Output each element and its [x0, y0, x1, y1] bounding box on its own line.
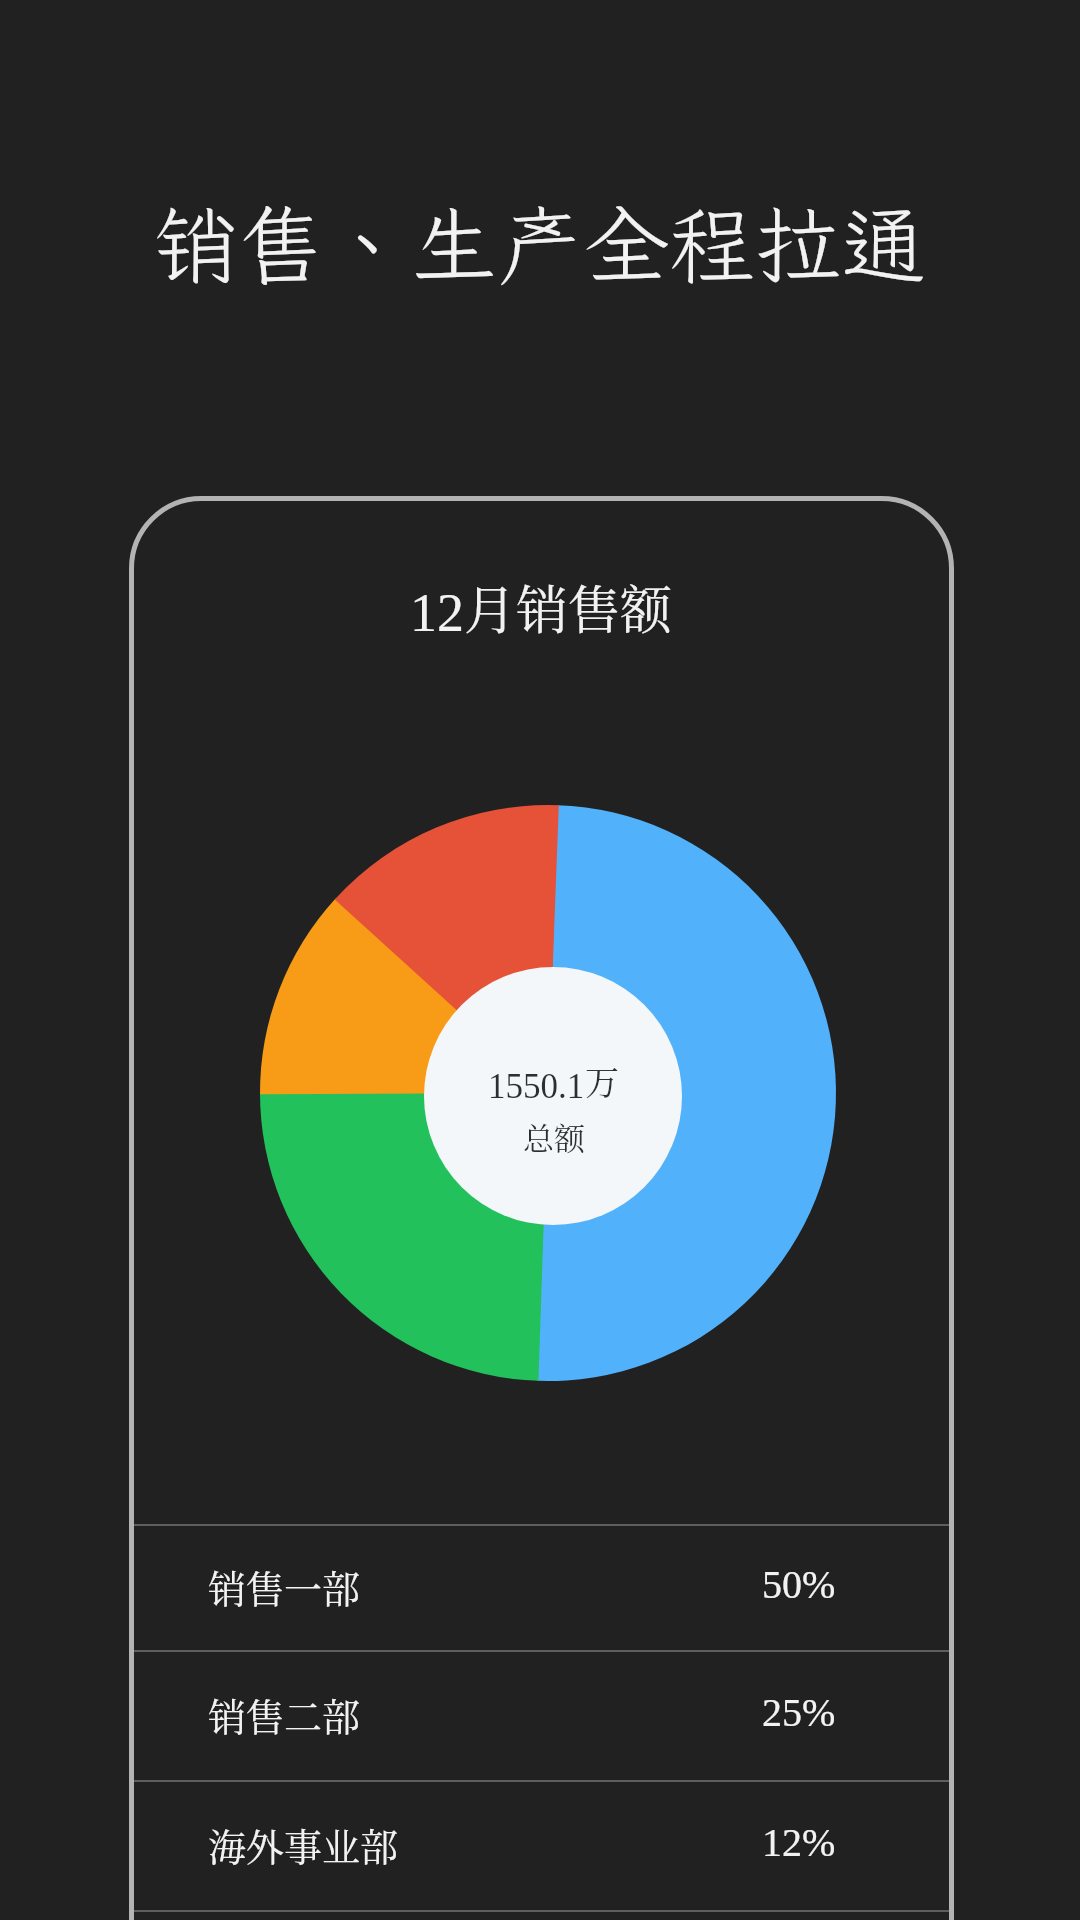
button[interactable]: 销售一部 [134, 1524, 949, 1650]
staticText: 海外事业部 [208, 1817, 399, 1872]
button[interactable]: 海外事业部 [134, 1780, 949, 1910]
staticText: 12 [410, 583, 464, 643]
staticText: 12% [762, 1820, 836, 1864]
staticText: 1550.1 [488, 1067, 585, 1106]
staticText: 总额 [523, 1114, 585, 1159]
staticText: 25% [762, 1690, 836, 1734]
button[interactable]: 研发中心 [134, 1910, 949, 1920]
staticText: 万 [585, 1056, 619, 1105]
staticText: 月销售额 [464, 569, 673, 644]
staticText: 50% [762, 1562, 836, 1606]
staticText: 销售一部 [208, 1559, 361, 1614]
staticText: 销售二部 [208, 1687, 361, 1742]
staticText: 销售、生产全程拉通 [0, 187, 1080, 300]
button[interactable]: 销售二部 [134, 1650, 949, 1780]
